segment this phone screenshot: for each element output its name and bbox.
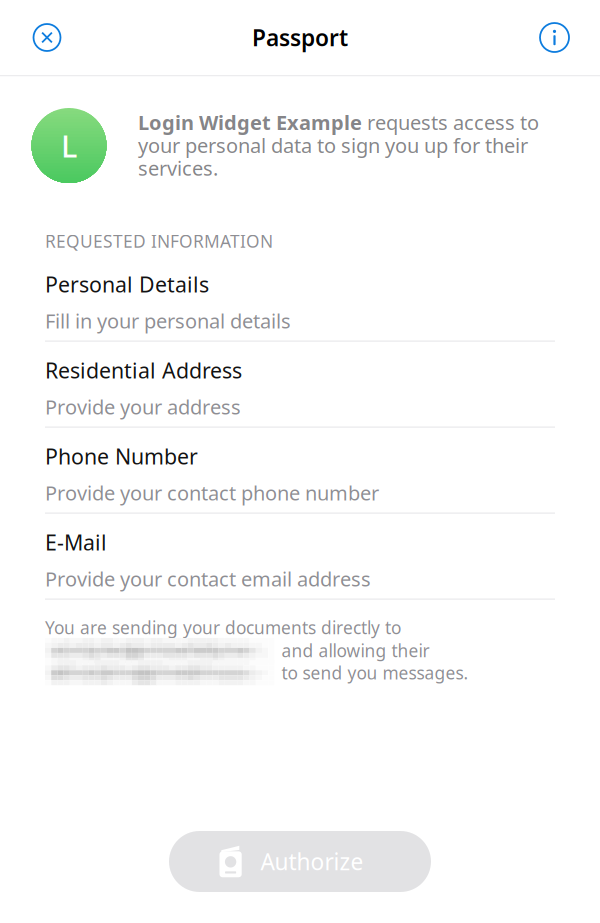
button[interactable]: Information <box>529 12 580 63</box>
button[interactable]: E-Mail <box>45 528 555 614</box>
button[interactable]: Residential Address <box>45 356 555 442</box>
staticText: L <box>61 125 77 166</box>
button[interactable]: Close <box>22 13 71 62</box>
button[interactable]: Authorize <box>169 831 431 892</box>
staticText: Provide your contact phone number <box>45 479 379 506</box>
button[interactable]: Personal Details <box>45 270 555 356</box>
staticText: Provide your address <box>45 393 241 420</box>
staticText: E-Mail <box>45 528 107 556</box>
staticText: You are sending your documents directly … <box>45 616 401 639</box>
staticText: REQUESTED INFORMATION <box>45 230 273 253</box>
staticText: Login Widget Example requests access to … <box>138 109 539 181</box>
staticText: Phone Number <box>45 442 198 470</box>
staticText: Personal Details <box>45 270 209 298</box>
staticText: Authorize <box>260 846 363 876</box>
staticText: Provide your contact email address <box>45 565 371 592</box>
staticText: Fill in your personal details <box>45 307 291 334</box>
staticText: to send you messages. <box>281 661 468 684</box>
button[interactable]: Phone Number <box>45 442 555 528</box>
staticText: Passport <box>252 22 348 52</box>
staticText: and allowing their <box>281 639 429 662</box>
staticText: Residential Address <box>45 356 242 384</box>
